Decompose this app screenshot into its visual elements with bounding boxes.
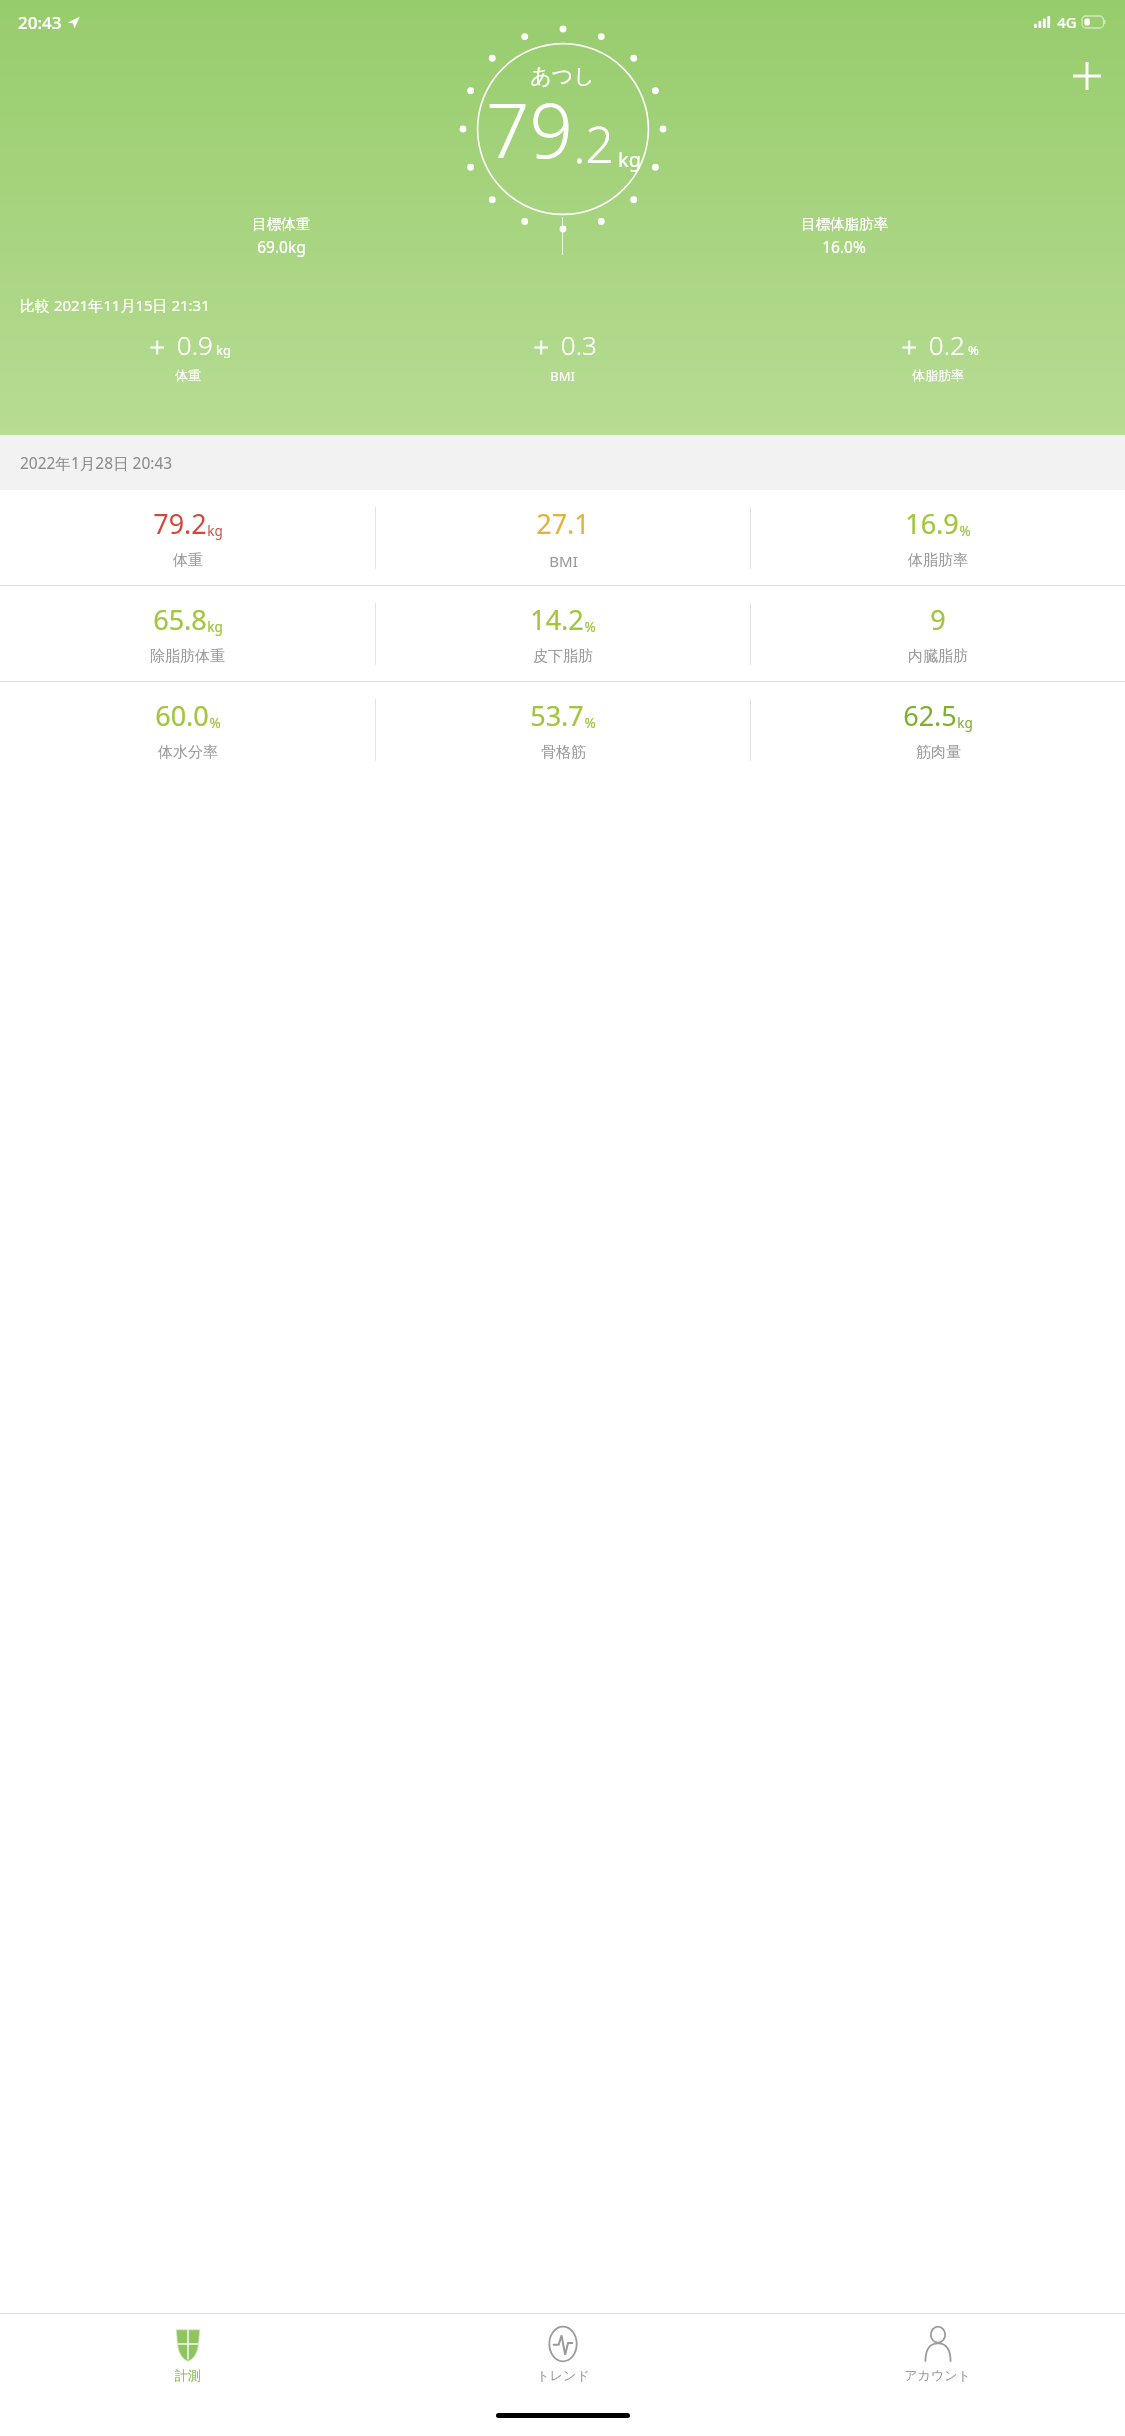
button[interactable]: 65.8 [0,586,375,681]
staticText: 79 [486,77,573,181]
staticText: 79.2 [153,505,207,542]
button[interactable]: トレンド [375,2314,750,2402]
staticText: あつし [530,63,595,89]
staticText: 体重 [173,551,203,570]
button[interactable]: Add measurement [1063,52,1111,100]
staticText: 内臓脂肪 [908,647,968,666]
staticText: kg [618,146,641,173]
button[interactable]: 79.2 [0,490,375,585]
staticText: 53.7 [530,697,584,734]
button[interactable]: アカウント [750,2314,1125,2402]
button[interactable]: 計測 [0,2314,375,2402]
staticText: トレンド [536,2367,590,2383]
staticText: 計測 [175,2367,201,2383]
button[interactable]: 14.2 [376,586,750,681]
button[interactable]: 16.9 [751,490,1125,585]
staticText: 16.0% [822,236,866,257]
staticText: 2022年1月28日 20:43 [20,452,173,473]
staticText: 14.2 [530,601,584,638]
staticText: kg [207,618,223,636]
staticText: 比較 2021年11月15日 21:31 [20,295,210,315]
staticText: 骨格筋 [541,743,586,762]
button[interactable]: 2022年1月28日 20:43 [0,435,1125,490]
staticText: 69.0kg [257,236,306,257]
staticText: 9 [930,601,946,638]
staticText: kg [207,522,223,540]
staticText: BMI [549,551,578,571]
staticText: % [209,714,221,732]
staticText: kg [216,341,231,359]
other: 計測 [170,2326,206,2362]
staticText: ＋ 0.2 [896,327,965,363]
button[interactable]: ＋ 0.2 [750,327,1125,383]
staticText: 除脂肪体重 [150,647,225,666]
button[interactable]: 62.5 [751,682,1125,777]
staticText: 65.8 [153,601,207,638]
staticText: BMI [550,367,575,385]
staticText: 体脂肪率 [908,551,968,570]
staticText: 4G [1057,12,1077,32]
button[interactable]: 60.0 [0,682,375,777]
staticText: 筋肉量 [916,743,961,762]
staticText: 60.0 [155,697,209,734]
button[interactable]: ＋ 0.9 [0,327,375,383]
staticText: 皮下脂肪 [533,647,593,666]
staticText: 27.1 [536,505,590,542]
other: アカウント [920,2326,956,2362]
staticText: .2 [573,110,614,178]
button[interactable]: ＋ 0.3 [375,327,750,385]
staticText: % [584,618,596,636]
staticText: アカウント [904,2367,971,2383]
staticText: ＋ 0.3 [528,327,597,363]
staticText: 体重 [175,367,201,383]
button[interactable]: 53.7 [376,682,750,777]
staticText: kg [957,714,973,732]
staticText: 20:43 [18,11,62,34]
button[interactable]: 27.1 [376,490,750,585]
button[interactable]: 9 [751,586,1125,681]
other: トレンド [545,2326,581,2362]
staticText: 62.5 [903,697,957,734]
staticText: 目標体重 [252,215,310,233]
staticText: % [959,522,971,540]
staticText: 目標体脂肪率 [801,215,888,233]
staticText: 16.9 [905,505,959,542]
staticText: % [584,714,596,732]
staticText: 体水分率 [158,743,218,762]
staticText: ＋ 0.9 [144,327,213,363]
staticText: % [968,341,979,359]
staticText: 体脂肪率 [912,367,964,383]
